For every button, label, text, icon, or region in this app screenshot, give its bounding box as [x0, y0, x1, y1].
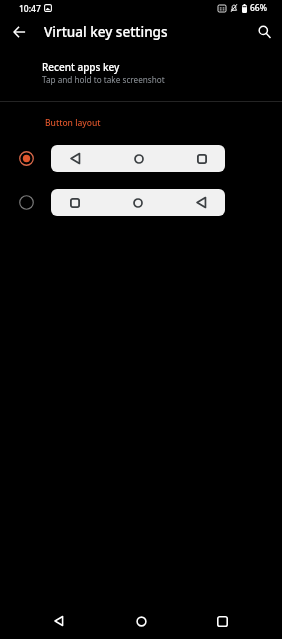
button[interactable]: Back [5, 17, 35, 47]
staticText: 10:47 [19, 3, 41, 15]
button[interactable]: Back [46, 608, 72, 634]
staticText: Recent apps key [42, 60, 120, 74]
button[interactable]: Search [249, 17, 279, 47]
button[interactable]: Home [128, 608, 154, 634]
staticText: Tap and hold to take screenshot [42, 74, 165, 85]
button[interactable]: Back, home, recents layout [0, 143, 282, 174]
button[interactable]: Recents, home, back layout [0, 187, 282, 218]
staticText: 66% [250, 2, 267, 14]
button[interactable]: Recent apps [209, 608, 235, 634]
staticText: Virtual key settings [44, 23, 168, 41]
staticText: Button layout [45, 117, 101, 129]
